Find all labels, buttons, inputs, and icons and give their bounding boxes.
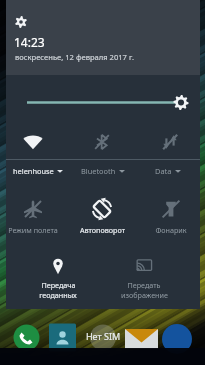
staticText: Data (155, 166, 172, 176)
button[interactable]: Cast screen (111, 257, 177, 300)
button[interactable]: Wi-Fi (23, 132, 43, 152)
button[interactable]: Flashlight (138, 199, 204, 235)
button[interactable]: Bluetooth (93, 133, 111, 151)
button[interactable]: Data (135, 166, 200, 176)
button[interactable]: Auto-rotate (69, 199, 135, 235)
button[interactable]: Airplane mode (0, 199, 66, 235)
button[interactable]: Bluetooth (70, 166, 135, 176)
button[interactable]: Brightness (6, 88, 200, 116)
staticText: Режим полета (8, 225, 58, 235)
staticText: Передать (127, 280, 161, 290)
staticText: геоданных (39, 290, 77, 300)
staticText: Фонарик (155, 225, 187, 235)
button[interactable]: Mobile data (161, 133, 179, 151)
button[interactable]: Settings (15, 16, 27, 28)
button[interactable]: Location (25, 257, 91, 300)
staticText: helenhouse (13, 166, 54, 176)
staticText: Нет SIM (80, 330, 126, 342)
staticText: 14:23 (14, 34, 45, 50)
staticText: воскресенье, 12 февраля 2017 г. (15, 52, 134, 62)
button[interactable]: helenhouse (6, 166, 70, 176)
staticText: Передача (41, 280, 76, 290)
staticText: Bluetooth (81, 166, 116, 176)
staticText: Автоповорот (80, 225, 125, 235)
staticText: изображение (121, 290, 168, 300)
